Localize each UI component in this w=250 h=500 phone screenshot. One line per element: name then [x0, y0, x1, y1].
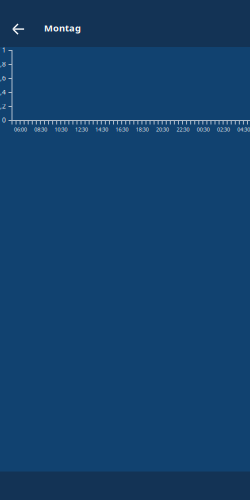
staticText: Montag — [44, 22, 81, 34]
staticText: 20:30 — [156, 126, 169, 133]
staticText: 16:30 — [115, 126, 128, 133]
staticText: 14:30 — [95, 126, 108, 133]
staticText: 06:00 — [14, 126, 27, 133]
staticText: 18:30 — [136, 126, 149, 133]
staticText: 0,4 — [0, 88, 6, 96]
staticText: 02:30 — [217, 126, 230, 133]
button[interactable]: Back — [6, 18, 31, 37]
staticText: 10:30 — [55, 126, 68, 133]
staticText: 00:30 — [197, 126, 210, 133]
staticText: 08:30 — [34, 126, 47, 133]
staticText: 1 — [2, 46, 6, 54]
staticText: 04:30 — [237, 126, 250, 133]
staticText: 0,8 — [0, 60, 6, 68]
staticText: 0 — [2, 116, 6, 124]
staticText: 0,2 — [0, 102, 6, 110]
staticText: 12:30 — [75, 126, 88, 133]
staticText: 22:30 — [176, 126, 189, 133]
staticText: 0,6 — [0, 74, 6, 82]
